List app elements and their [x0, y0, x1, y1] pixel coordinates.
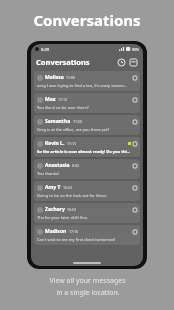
button[interactable]: Zachary	[34, 203, 140, 223]
button[interactable]: Archive	[129, 58, 138, 67]
button[interactable]: Samantha	[34, 115, 140, 135]
staticText: View all your messages	[49, 276, 126, 286]
staticText: 16:52	[63, 185, 72, 190]
staticText: Samantha	[45, 118, 71, 125]
staticText: 11:50	[73, 119, 82, 124]
staticText: Can't wait to see my first client tomorr…	[37, 237, 116, 242]
staticText: Max	[45, 96, 56, 103]
staticText: Conversations	[33, 10, 141, 30]
staticText: 8:02	[72, 163, 79, 168]
button[interactable]: Max	[34, 93, 140, 113]
staticText: 16:53	[67, 207, 76, 212]
staticText: Zachary	[45, 206, 65, 213]
staticText: Thx for your later shift fine.	[37, 215, 89, 220]
button[interactable]: Recent	[117, 58, 126, 67]
button[interactable]: Kevin L.	[34, 137, 140, 157]
staticText: Madison	[45, 228, 67, 235]
staticText: 17:10	[69, 229, 78, 234]
staticText: Conversations	[36, 57, 90, 67]
button[interactable]: Anastasia	[34, 159, 140, 179]
staticText: Melissa	[45, 74, 64, 81]
staticText: Kevin L.	[45, 140, 65, 147]
staticText: You thanks!	[37, 171, 59, 176]
staticText: omg I was trying to find a tea, it's cra…	[37, 83, 128, 88]
button[interactable]: Amy T	[34, 181, 140, 201]
staticText: Anastasia	[45, 162, 70, 169]
staticText: Amy T	[45, 184, 61, 191]
button[interactable]: Melissa	[34, 71, 140, 91]
staticText: 9:29	[41, 47, 49, 52]
staticText: Going to be on the look out for these	[37, 193, 107, 198]
staticText: You like it so far over there?	[37, 105, 89, 110]
staticText: So the article is now almost ready! Do y…	[37, 149, 131, 154]
staticText: 11:12	[58, 97, 67, 102]
staticText: 11:13	[67, 141, 76, 146]
button[interactable]: Madison	[34, 225, 140, 245]
staticText: Greg is at the office, are you there yet…	[37, 127, 110, 132]
staticText: in a single location.	[56, 288, 120, 298]
staticText: 11:06	[66, 75, 75, 80]
staticText: 99%	[132, 47, 139, 52]
